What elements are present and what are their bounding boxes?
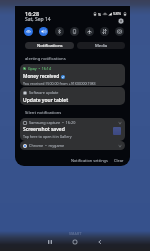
staticText: Software update xyxy=(29,90,59,95)
button[interactable]: Media xyxy=(77,42,125,49)
staticText: Notifications xyxy=(37,43,63,49)
button[interactable]: Wi-Fi xyxy=(24,27,33,36)
staticText: Notification settings xyxy=(71,158,108,163)
button[interactable]: Camera access xyxy=(115,27,124,36)
staticText: Update your tablet xyxy=(23,97,69,104)
staticText: alerting notifications xyxy=(25,56,66,62)
staticText: Media xyxy=(95,43,108,49)
staticText: Clear xyxy=(114,158,124,163)
button[interactable]: Notifications xyxy=(25,42,74,49)
button[interactable]: Back xyxy=(93,235,107,249)
staticText: 58% xyxy=(113,11,122,17)
staticText: Samsung capture • 16:20 xyxy=(29,120,76,125)
staticText: You received ₹500.00 from +91XXXXXX1983 xyxy=(23,81,96,86)
button[interactable]: Airplane mode xyxy=(85,27,94,36)
button[interactable]: Auto-rotate xyxy=(70,27,79,36)
button[interactable]: Samsung capture • 16:20 xyxy=(20,118,125,141)
staticText: Screenshot saved xyxy=(23,126,65,133)
button[interactable]: Recent apps xyxy=(43,235,57,249)
staticText: 16:28 xyxy=(25,10,40,17)
button[interactable]: Home xyxy=(68,235,82,249)
button[interactable]: Gpay • 16:14 xyxy=(20,64,125,86)
button[interactable]: Sound xyxy=(39,27,48,36)
button[interactable]: Chrome • mygame xyxy=(20,141,125,150)
staticText: Silent notifications xyxy=(25,110,62,116)
button[interactable]: Clear xyxy=(112,157,126,164)
button[interactable]: Software update xyxy=(20,87,125,105)
staticText: Tap here to open it in Gallery xyxy=(23,134,72,139)
staticText: Chrome • mygame xyxy=(29,143,65,148)
staticText: Money received xyxy=(23,73,60,80)
button[interactable]: Notification settings xyxy=(69,157,110,164)
button[interactable]: Bluetooth xyxy=(55,27,64,36)
button[interactable]: Settings xyxy=(115,15,126,26)
staticText: Sat, Sep 14 xyxy=(25,16,51,23)
staticText: % xyxy=(98,12,101,17)
staticText: SMART xyxy=(69,231,82,236)
button[interactable]: Data saver xyxy=(100,27,109,36)
staticText: Gpay • 16:14 xyxy=(28,66,51,71)
